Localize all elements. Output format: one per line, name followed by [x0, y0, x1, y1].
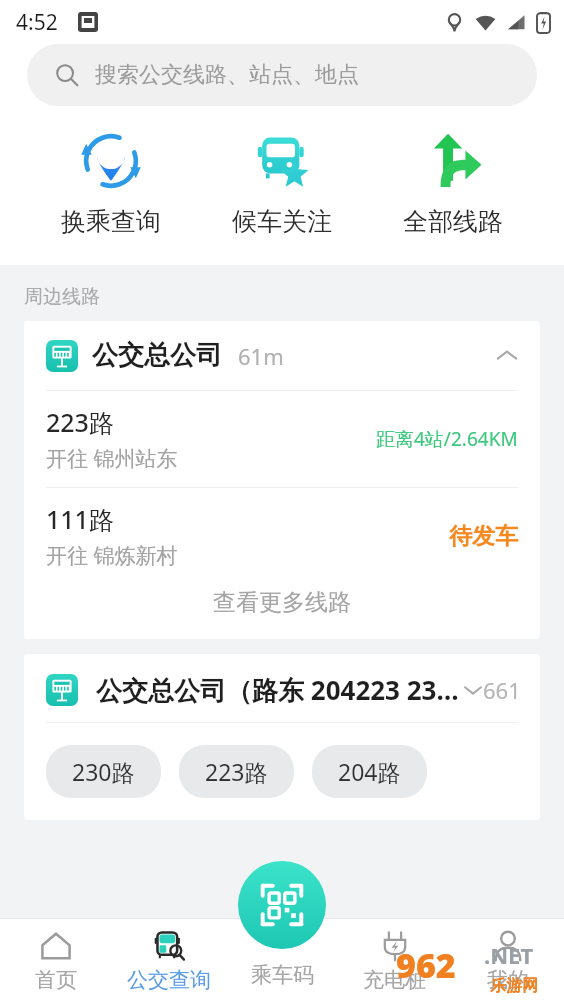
staticText: 查看更多线路: [213, 588, 351, 617]
staticText: 公交总公司: [92, 339, 222, 372]
staticText: 111路: [46, 502, 114, 536]
staticText: 我的: [487, 967, 529, 993]
staticText: 962: [396, 942, 456, 988]
button[interactable]: 223路: [24, 391, 540, 487]
button[interactable]: 搜索公交线路、站点、地点: [27, 44, 537, 106]
button[interactable]: 230路: [46, 745, 161, 798]
button[interactable]: 全部线路: [393, 126, 513, 241]
button[interactable]: 查看更多线路: [24, 584, 540, 639]
staticText: 周边线路: [24, 285, 100, 309]
button[interactable]: 换乘查询: [51, 126, 171, 241]
staticText: 61m: [238, 341, 284, 371]
button[interactable]: 公交查询: [112, 918, 225, 1004]
staticText: 首页: [35, 967, 77, 993]
staticText: 换乘查询: [61, 206, 161, 237]
staticText: 充电桩: [363, 967, 426, 993]
staticText: 乘车码: [251, 962, 314, 988]
staticText: 搜索公交线路、站点、地点: [95, 61, 359, 89]
staticText: 204路: [338, 756, 401, 787]
staticText: 223路: [46, 405, 114, 439]
button[interactable]: 乘车码扫码: [238, 861, 326, 949]
staticText: 661m: [483, 675, 540, 705]
staticText: 待发车: [449, 522, 518, 551]
staticText: 开往 锦炼新村: [46, 541, 178, 570]
staticText: 全部线路: [403, 206, 503, 237]
staticText: 公交总公司（路东 204223 23…: [96, 672, 459, 708]
staticText: 乐游网: [490, 976, 538, 996]
staticText: 开往 锦州站东: [46, 444, 178, 473]
button[interactable]: 公交总公司（路东 204223 23…: [24, 654, 540, 722]
staticText: 230路: [72, 756, 135, 787]
button[interactable]: 充电桩: [338, 918, 451, 1004]
staticText: 候车关注: [232, 206, 332, 237]
staticText: 223路: [205, 756, 268, 787]
staticText: 公交查询: [127, 967, 211, 993]
button[interactable]: 我的: [451, 918, 564, 1004]
button[interactable]: 候车关注: [222, 126, 342, 241]
button[interactable]: 乘车码: [226, 918, 338, 1004]
button[interactable]: 223路: [179, 745, 294, 798]
staticText: .NET: [484, 940, 534, 970]
button[interactable]: 204路: [312, 745, 427, 798]
staticText: 距离4站/2.64KM: [376, 426, 518, 452]
button[interactable]: 公交总公司: [24, 321, 540, 390]
staticText: 4:52: [16, 8, 58, 37]
button[interactable]: 111路: [24, 488, 540, 584]
button[interactable]: 首页: [0, 918, 112, 1004]
